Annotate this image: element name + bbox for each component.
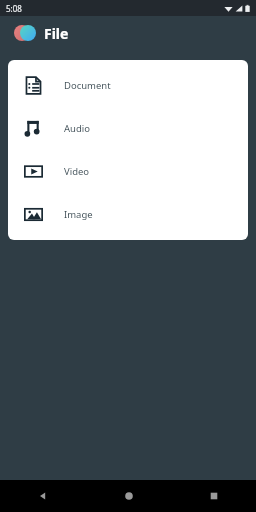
staticText: Video (64, 165, 90, 178)
button[interactable]: Back (0, 480, 86, 512)
button[interactable]: Recents (171, 480, 256, 512)
button[interactable]: Home (86, 480, 171, 512)
button[interactable]: Audio (8, 107, 248, 150)
staticText: File (44, 24, 69, 43)
button[interactable]: Video (8, 150, 248, 193)
staticText: Image (64, 208, 93, 221)
staticText: 5:08 (6, 3, 22, 14)
staticText: Audio (64, 122, 90, 135)
staticText: Document (64, 79, 111, 92)
button[interactable]: Document (8, 64, 248, 107)
button[interactable]: Image (8, 193, 248, 236)
